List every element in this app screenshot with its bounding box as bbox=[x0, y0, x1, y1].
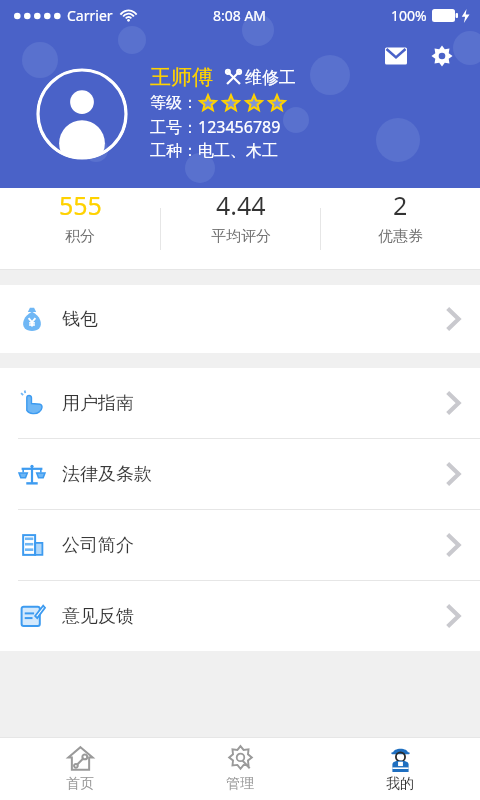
staticText: 4.44 bbox=[216, 188, 266, 222]
staticText: 首页 bbox=[66, 775, 94, 793]
button[interactable]: 意见反馈 bbox=[0, 581, 480, 651]
button[interactable]: 管理 bbox=[160, 738, 320, 800]
staticText: 工号：123456789 bbox=[150, 116, 281, 138]
button[interactable]: Settings bbox=[422, 36, 462, 76]
staticText: 2 bbox=[393, 188, 408, 222]
button[interactable]: 我的 bbox=[320, 738, 480, 800]
staticText: 法律及条款 bbox=[62, 463, 152, 486]
staticText: 8:08 AM bbox=[213, 6, 267, 25]
button[interactable]: 4.44 bbox=[161, 188, 320, 246]
button[interactable]: Profile photo bbox=[36, 68, 128, 160]
staticText: 优惠券 bbox=[378, 227, 423, 246]
staticText: Carrier bbox=[67, 6, 113, 25]
button[interactable]: 钱包 bbox=[0, 285, 480, 353]
staticText: 我的 bbox=[386, 775, 414, 793]
button[interactable]: 首页 bbox=[0, 738, 160, 800]
staticText: 钱包 bbox=[62, 308, 98, 331]
staticText: 平均评分 bbox=[211, 227, 271, 246]
staticText: 公司简介 bbox=[62, 534, 134, 557]
staticText: 用户指南 bbox=[62, 392, 134, 415]
staticText: 积分 bbox=[65, 227, 95, 246]
staticText: 555 bbox=[59, 188, 102, 222]
staticText: 100% bbox=[391, 6, 427, 25]
staticText: 等级： bbox=[150, 93, 198, 113]
staticText: 工种：电工、木工 bbox=[150, 141, 278, 161]
button[interactable]: 555 bbox=[0, 188, 160, 246]
button[interactable]: 2 bbox=[321, 188, 480, 246]
button[interactable]: 法律及条款 bbox=[0, 439, 480, 509]
staticText: 维修工 bbox=[245, 67, 296, 88]
staticText: 王师傅 bbox=[150, 64, 213, 90]
button[interactable]: 公司简介 bbox=[0, 510, 480, 580]
staticText: 管理 bbox=[226, 775, 254, 793]
button[interactable]: Messages bbox=[376, 36, 416, 76]
staticText: 意见反馈 bbox=[62, 605, 134, 628]
button[interactable]: 用户指南 bbox=[0, 368, 480, 438]
